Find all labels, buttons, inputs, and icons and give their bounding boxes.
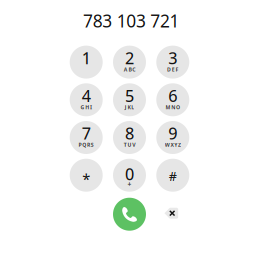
button[interactable]: 1 (70, 46, 103, 79)
staticText: DEF (167, 66, 179, 73)
button[interactable]: 8 (113, 121, 146, 154)
button[interactable]: 5 (113, 83, 146, 116)
staticText: TUV (124, 141, 135, 148)
button[interactable]: * (70, 159, 103, 192)
button[interactable]: 7 (70, 121, 103, 154)
button[interactable]: 2 (113, 46, 146, 79)
staticText: 5 (125, 84, 134, 107)
button[interactable]: 6 (156, 83, 189, 116)
button[interactable]: 0 (113, 159, 146, 192)
staticText: 0 (125, 163, 134, 185)
button[interactable]: Delete (156, 198, 189, 231)
staticText: PQRS (79, 141, 94, 148)
staticText: JKL (125, 104, 134, 111)
button[interactable]: 4 (70, 83, 103, 116)
staticText (86, 179, 87, 186)
staticText: 3 (168, 47, 177, 69)
staticText: + (127, 180, 131, 189)
staticText: 9 (168, 122, 177, 144)
staticText: ABC (124, 66, 135, 73)
staticText: 783 103 721 (83, 9, 179, 33)
staticText: 8 (125, 122, 134, 144)
staticText: # (169, 168, 177, 185)
staticText: 2 (125, 47, 134, 69)
staticText: 7 (82, 122, 91, 144)
staticText (172, 179, 173, 186)
staticText: 1 (82, 47, 91, 69)
button[interactable]: 3 (156, 46, 189, 79)
staticText: WXYZ (165, 141, 181, 148)
button[interactable]: Call (113, 198, 146, 231)
staticText: GHI (80, 104, 92, 111)
button[interactable]: 9 (156, 121, 189, 154)
button[interactable]: # (156, 159, 189, 192)
staticText: 6 (168, 84, 177, 107)
staticText: MNO (166, 104, 180, 111)
staticText: * (82, 169, 90, 189)
staticText: 4 (82, 84, 91, 107)
